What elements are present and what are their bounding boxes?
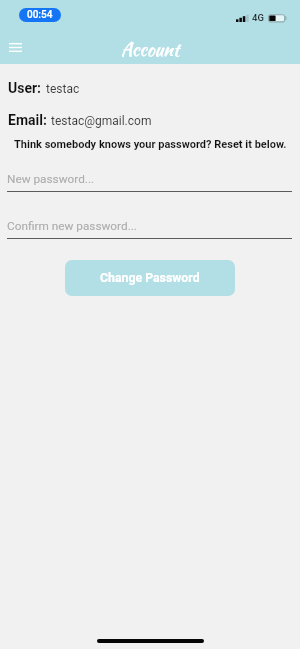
staticText: 00:54 xyxy=(27,9,53,21)
staticText: Account xyxy=(121,37,180,63)
button[interactable]: Open navigation menu xyxy=(0,32,30,62)
staticText: testac@gmail.com xyxy=(51,114,152,128)
staticText: New password... xyxy=(7,172,95,186)
staticText: Email: xyxy=(8,112,47,128)
staticText: Think somebody knows your password? Rese… xyxy=(14,138,287,151)
button[interactable]: Change Password xyxy=(65,260,235,296)
staticText: testac xyxy=(46,82,80,96)
staticText: Change Password xyxy=(100,271,200,285)
staticText: User: xyxy=(8,80,42,96)
staticText: 4G xyxy=(252,12,264,23)
staticText: Confirm new password... xyxy=(7,219,137,233)
